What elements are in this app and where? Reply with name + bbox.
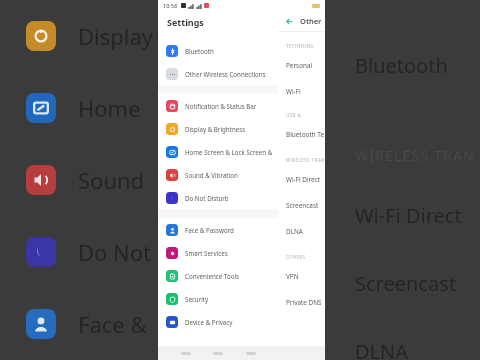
staticText: OTHERS bbox=[286, 254, 306, 260]
button[interactable]: Bluetooth Te bbox=[278, 121, 325, 147]
staticText: Convenience Tools bbox=[185, 272, 239, 280]
button[interactable]: Smart Services bbox=[158, 241, 278, 264]
staticText: Screencast bbox=[286, 201, 319, 210]
staticText: Do Not D bbox=[78, 237, 160, 267]
staticText: 10:58 bbox=[163, 2, 178, 9]
button[interactable]: VPN bbox=[278, 263, 325, 289]
staticText: Face & Pa bbox=[78, 309, 160, 339]
staticText: Display & bbox=[78, 21, 160, 51]
button[interactable]: Navigation bbox=[246, 352, 256, 355]
button[interactable]: Back bbox=[283, 15, 295, 27]
staticText: Sound & bbox=[78, 165, 160, 195]
button[interactable]: Device & Privacy bbox=[158, 310, 278, 333]
staticText: USB & SHARING bbox=[286, 112, 325, 118]
staticText: Screencast bbox=[355, 270, 456, 297]
staticText: Home Screen & Lock Screen & bbox=[185, 148, 273, 156]
staticText: Other Wireless Connections bbox=[185, 70, 266, 78]
button[interactable]: Navigation bbox=[213, 352, 223, 355]
staticText: VPN bbox=[286, 272, 299, 281]
staticText: Wi-Fi Direct bbox=[355, 202, 462, 229]
button[interactable]: Display & Brightness bbox=[158, 117, 278, 140]
staticText: Bluetooth Te bbox=[286, 130, 325, 139]
staticText: WIRELESS TRAN bbox=[355, 146, 476, 165]
staticText: DLNA bbox=[355, 338, 409, 360]
button[interactable]: Face & Password bbox=[158, 218, 278, 241]
staticText: Wi-Fi Direct bbox=[286, 175, 321, 184]
staticText: Settings bbox=[167, 16, 204, 28]
button[interactable]: Screencast bbox=[278, 192, 325, 218]
button[interactable]: Private DNS bbox=[278, 289, 325, 315]
button[interactable]: Notification & Status Bar bbox=[158, 94, 278, 117]
button[interactable]: Wi-Fi Direct bbox=[278, 166, 325, 192]
staticText: Notification & Status Bar bbox=[185, 102, 257, 110]
staticText: Other bbox=[300, 16, 322, 26]
button[interactable]: Home Screen & Lock Screen & bbox=[158, 140, 278, 163]
button[interactable]: Navigation bbox=[181, 352, 191, 355]
button[interactable]: DLNA bbox=[278, 218, 325, 244]
staticText: Private DNS bbox=[286, 298, 322, 307]
staticText: WIRELESS TRAN bbox=[286, 157, 325, 163]
button[interactable]: Personal hots bbox=[278, 52, 325, 78]
staticText: DLNA bbox=[286, 227, 303, 236]
button[interactable]: Sound & Vibration bbox=[158, 163, 278, 186]
staticText: Face & Password bbox=[185, 226, 234, 234]
staticText: Display & Brightness bbox=[185, 125, 246, 133]
staticText: Sound & Vibration bbox=[185, 171, 238, 179]
staticText: TETHERING bbox=[286, 43, 314, 49]
button[interactable]: Bluetooth bbox=[158, 39, 278, 62]
staticText: Home Sc bbox=[78, 93, 160, 123]
staticText: Bluetooth bbox=[185, 47, 214, 55]
staticText: Personal hots bbox=[286, 61, 325, 70]
button[interactable]: Wi-Fi tethering bbox=[278, 78, 325, 104]
staticText: Device & Privacy bbox=[185, 318, 233, 326]
button[interactable]: Other Wireless Connections bbox=[158, 62, 278, 85]
staticText: Security bbox=[185, 295, 209, 303]
button[interactable]: Security bbox=[158, 287, 278, 310]
staticText: Smart Services bbox=[185, 249, 228, 257]
button[interactable]: Convenience Tools bbox=[158, 264, 278, 287]
staticText: Do Not Disturb bbox=[185, 194, 229, 202]
button[interactable]: Do Not Disturb bbox=[158, 186, 278, 209]
staticText: Bluetooth Tet bbox=[355, 52, 480, 79]
staticText: Wi-Fi tethering bbox=[286, 87, 325, 96]
